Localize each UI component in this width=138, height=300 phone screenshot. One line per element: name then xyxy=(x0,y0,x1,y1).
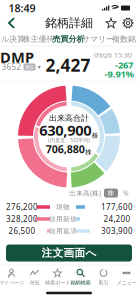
staticText: 328,200 xyxy=(6,214,38,224)
staticText: ル決算 xyxy=(1,34,25,44)
button[interactable]: 注文画面へ xyxy=(6,244,132,261)
button[interactable]: Back xyxy=(1,13,23,33)
button[interactable]: Settings xyxy=(119,14,136,31)
button[interactable]: 取引 xyxy=(92,266,115,288)
button[interactable]: ル決算 xyxy=(2,32,24,45)
staticText: 276,200 xyxy=(6,202,38,212)
staticText: 注文画面へ xyxy=(41,246,96,259)
staticText: 24,200 xyxy=(103,214,130,224)
button[interactable]: 銘柄検索 xyxy=(69,266,92,288)
staticText: 706,880 xyxy=(46,142,85,156)
staticText: 3652 xyxy=(1,62,21,72)
staticText: 検索ボード xyxy=(45,279,70,286)
staticText: -267 xyxy=(115,59,133,71)
staticText: -9.91% xyxy=(104,68,133,80)
staticText: 株主優待 xyxy=(22,34,54,44)
button[interactable]: サマリー xyxy=(84,32,112,45)
button[interactable]: 検索ボード xyxy=(46,266,69,288)
staticText: DMP xyxy=(0,47,34,67)
staticText: 株 xyxy=(92,131,99,140)
staticText: (内直近：5日平均) xyxy=(48,136,90,144)
staticText: 18:49 xyxy=(8,1,35,15)
staticText: 取引 xyxy=(98,279,108,286)
staticText: 2,427 xyxy=(45,53,90,76)
staticText: 現物 xyxy=(56,203,70,211)
staticText: 売買分析 xyxy=(52,34,84,44)
staticText: 303,900 xyxy=(101,226,133,236)
button[interactable]: 売買分析 xyxy=(53,32,84,45)
staticText: 銘柄詳細 xyxy=(45,16,93,30)
staticText: 銘柄検索 xyxy=(70,279,90,286)
staticText: 市況 xyxy=(29,279,39,286)
staticText: 26,500 xyxy=(8,226,35,236)
staticText: 複数銘 xyxy=(112,34,136,44)
button[interactable]: 株主優待 xyxy=(24,32,53,45)
staticText: 630,900 xyxy=(39,120,91,140)
button[interactable]: メニュー xyxy=(115,266,138,288)
staticText: 信用新規 xyxy=(49,215,77,223)
button[interactable]: マイページ xyxy=(0,266,23,288)
button[interactable]: Add to favourites xyxy=(102,14,119,31)
staticText: 株 xyxy=(85,148,92,156)
staticText: 出来高(株) xyxy=(69,189,101,197)
staticText: 信用返済 xyxy=(49,227,77,235)
staticText: サマリー xyxy=(82,34,114,44)
button[interactable]: 市況 xyxy=(23,266,46,288)
staticText: マイページ xyxy=(0,279,24,286)
staticText: 177,600 xyxy=(101,202,133,212)
staticText: 出来高合計 xyxy=(49,113,89,123)
button[interactable]: 複数銘 xyxy=(112,32,136,45)
staticText: 株 xyxy=(107,189,114,197)
button[interactable]: 株 xyxy=(104,188,118,197)
staticText: ▾ xyxy=(37,63,40,71)
staticText: 09/26 15:30 xyxy=(94,51,132,59)
staticText: 東G xyxy=(25,63,34,71)
staticText: % xyxy=(123,189,129,197)
staticText: メニュー xyxy=(116,279,136,286)
